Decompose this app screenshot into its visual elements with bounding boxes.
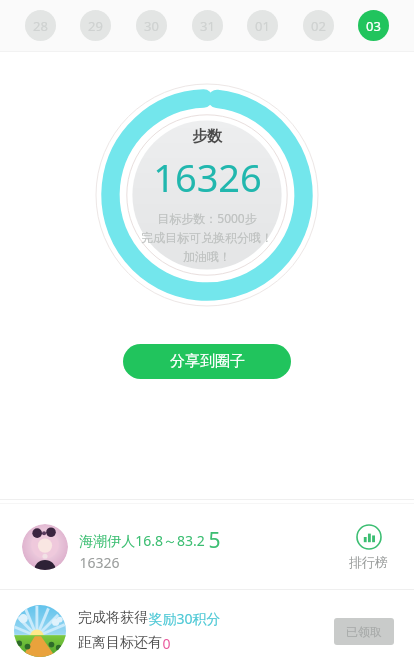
staticText: 03 [366,17,381,35]
button[interactable]: 29 [80,10,111,41]
button[interactable]: 03 [358,10,389,41]
staticText: 奖励30积分 [148,609,221,628]
button[interactable]: 分享到圈子 [123,344,291,379]
button[interactable]: 已领取 [334,618,394,645]
button[interactable]: 完成将获得 [0,590,414,672]
button[interactable]: 海潮伊人16.8～83.2 [0,504,414,589]
staticText: 完成目标可兑换积分哦！ [141,230,273,245]
staticText: 01 [255,17,270,35]
staticText: 16326 [153,151,262,203]
staticText: 分享到圈子 [170,352,245,371]
staticText: 完成将获得 [78,609,148,627]
staticText: 已领取 [346,624,382,639]
staticText: 目标步数：5000步 [157,210,257,226]
staticText: 29 [88,17,103,35]
button[interactable]: 02 [303,10,334,41]
staticText: 02 [311,17,326,35]
button[interactable]: 01 [247,10,278,41]
staticText: 31 [200,17,215,35]
staticText: 距离目标还有 [78,634,162,652]
staticText: 0 [162,634,171,653]
button[interactable]: 28 [25,10,56,41]
staticText: 28 [33,17,48,35]
button[interactable]: 30 [136,10,167,41]
staticText: 16326 [79,553,120,572]
button[interactable]: 31 [192,10,223,41]
staticText: 步数 [192,127,222,146]
staticText: 排行榜 [349,554,388,570]
staticText: 5 [208,526,221,555]
staticText: 海潮伊人16.8～83.2 [79,531,205,550]
staticText: 30 [144,17,159,35]
staticText: 加油哦！ [183,249,231,264]
button[interactable]: 排行榜 [349,524,388,570]
